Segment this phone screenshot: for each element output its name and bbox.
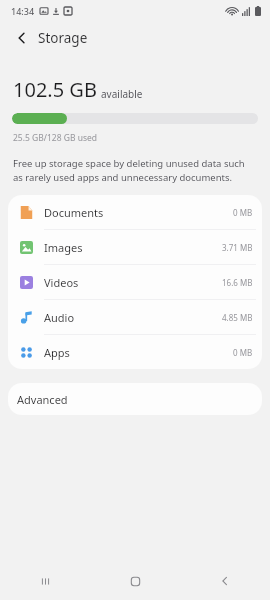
staticText: Free up storage space by deleting unused… [13,157,248,184]
staticText: 25.5 GB/128 GB used [13,132,98,144]
staticText: available [101,87,143,101]
button[interactable]: Advanced [8,383,262,415]
button[interactable]: Back [180,562,270,600]
staticText: 14:34 [11,5,35,17]
staticText: Audio [44,310,75,325]
staticText: 16.6 MB [222,277,253,288]
button[interactable]: Home [90,562,180,600]
staticText: Documents [44,205,104,220]
button[interactable]: Audio [8,300,262,334]
staticText: Storage [38,29,88,47]
staticText: 102.5 GB [13,76,97,103]
button[interactable]: Apps [8,335,262,369]
staticText: 4.85 MB [222,312,253,323]
staticText: 0 MB [233,207,253,218]
button[interactable]: Documents [8,195,262,229]
button[interactable]: Videos [8,265,262,299]
staticText: Videos [44,275,79,290]
staticText: Apps [44,345,70,360]
staticText: 0 MB [233,347,253,358]
button[interactable]: Navigate up [11,27,33,49]
staticText: Advanced [17,392,68,407]
staticText: 3.71 MB [222,242,253,253]
staticText: Images [44,240,83,255]
button[interactable]: Recent apps [0,562,90,600]
button[interactable]: Images [8,230,262,264]
